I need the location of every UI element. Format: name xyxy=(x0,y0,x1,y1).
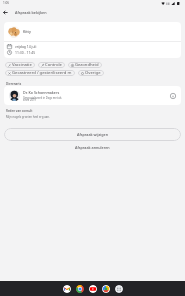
button[interactable]: App xyxy=(115,285,123,293)
button[interactable]: Gecastreerd / gesteriliseerd m xyxy=(5,70,75,76)
button[interactable]: Afspraak wijzigen xyxy=(4,128,181,141)
staticText: Gecastreerd / gesteriliseerd m xyxy=(12,70,72,76)
staticText: Gezondheid xyxy=(75,62,99,68)
button[interactable]: App xyxy=(89,285,97,293)
staticText: Reden van consult xyxy=(6,109,33,113)
button[interactable]: Gezondheid xyxy=(68,62,102,68)
staticText: Dr. Ko Schoenmakers xyxy=(23,90,60,95)
button[interactable]: App xyxy=(102,285,110,293)
staticText: Dierenarts xyxy=(6,82,22,86)
button[interactable]: Kitty xyxy=(4,22,181,41)
button[interactable]: App xyxy=(76,285,84,293)
staticText: Vaccinatie xyxy=(12,62,32,68)
button[interactable]: Terug xyxy=(0,7,10,17)
staticText: 1:06 xyxy=(3,1,10,5)
staticText: Mijn nagels groeien heel erg aan. xyxy=(6,115,50,119)
button[interactable]: Dr. Ko Schoenmakers xyxy=(4,86,181,105)
staticText: Kitty xyxy=(23,29,31,34)
staticText: Controle xyxy=(45,62,62,68)
staticText: vrijdag 14 juli xyxy=(15,44,37,49)
staticText: Afspraak wijzigen xyxy=(77,132,108,137)
button[interactable]: Controle xyxy=(38,62,65,68)
staticText: Overige xyxy=(85,70,101,76)
staticText: Afspraak annuleren xyxy=(75,145,110,150)
staticText: 11:30 - 11:45 xyxy=(15,50,36,55)
staticText: Gespecialiseerd in Dogs met als since 20… xyxy=(23,96,62,102)
button[interactable]: Afspraak annuleren xyxy=(4,142,181,153)
button[interactable]: Info xyxy=(169,92,177,100)
button[interactable]: Overige xyxy=(78,70,104,76)
staticText: Afspraak bekijken xyxy=(15,10,47,15)
button[interactable]: App xyxy=(63,285,71,293)
button[interactable]: Vaccinatie xyxy=(5,62,35,68)
